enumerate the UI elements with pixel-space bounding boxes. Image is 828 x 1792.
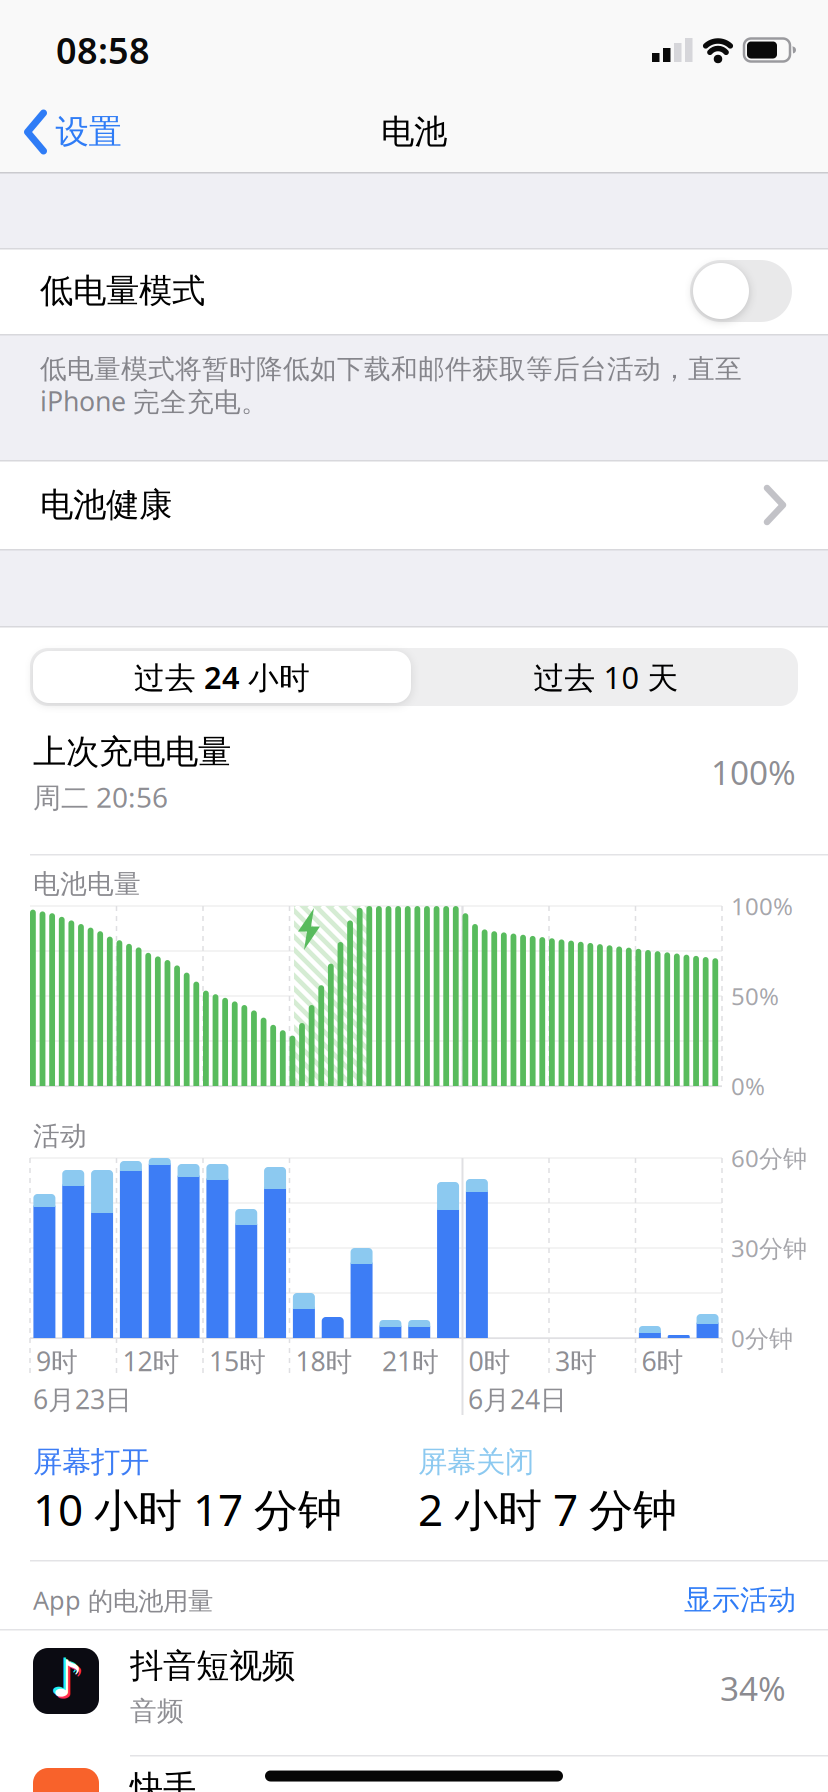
staticText: 音频 xyxy=(130,1695,184,1727)
staticText: iPhone 完全充电。 xyxy=(40,383,268,419)
staticText: 9时 xyxy=(36,1343,78,1379)
staticText: App 的电池用量 xyxy=(33,1583,213,1617)
staticText: 设置 xyxy=(55,111,121,152)
staticText: ♪ xyxy=(49,1648,81,1706)
button[interactable]: 显示活动 xyxy=(684,1583,796,1617)
button[interactable]: 低电量模式开关 xyxy=(690,260,792,322)
staticText: 6月24日 xyxy=(468,1381,567,1417)
staticText: 30分钟 xyxy=(731,1232,807,1264)
staticText: 2 小时 7 分钟 xyxy=(418,1480,677,1538)
staticText: 60分钟 xyxy=(731,1142,807,1174)
staticText: 12时 xyxy=(122,1343,179,1379)
staticText: 电池电量 xyxy=(33,868,141,900)
staticText: 08:58 xyxy=(56,26,150,74)
staticText: 0% xyxy=(731,1070,765,1102)
staticText: 6时 xyxy=(641,1343,683,1379)
staticText: 过去 24 小时 xyxy=(134,657,310,697)
staticText: 活动 xyxy=(33,1120,87,1152)
staticText: 低电量模式将暂时降低如下载和邮件获取等后台活动，直至 xyxy=(40,353,742,385)
staticText: ♪ xyxy=(53,1652,85,1710)
staticText: 21时 xyxy=(382,1343,439,1379)
staticText: 低电量模式 xyxy=(40,270,205,311)
staticText: 34% xyxy=(720,1666,786,1710)
staticText: 0时 xyxy=(468,1343,510,1379)
button[interactable]: 过去 10 天 xyxy=(417,651,795,703)
staticText: 显示活动 xyxy=(684,1583,796,1617)
staticText: 屏幕关闭 xyxy=(418,1444,534,1480)
staticText: 3时 xyxy=(555,1343,597,1379)
button[interactable]: 返回设置 xyxy=(24,102,121,162)
staticText: 15时 xyxy=(209,1343,266,1379)
staticText: 快手 xyxy=(130,1767,196,1792)
staticText: 过去 10 天 xyxy=(533,657,678,697)
staticText: ♪ xyxy=(51,1650,83,1708)
staticText: 上次充电电量 xyxy=(33,731,231,772)
staticText: 10 小时 17 分钟 xyxy=(33,1480,342,1538)
staticText: 50% xyxy=(731,980,779,1012)
button[interactable]: 过去 24 小时 xyxy=(33,651,411,703)
staticText: 周二 20:56 xyxy=(33,778,168,816)
staticText: 抖音短视频 xyxy=(130,1645,295,1686)
button[interactable]: 电池健康 xyxy=(0,461,828,549)
staticText: 电池健康 xyxy=(40,484,172,525)
staticText: 6月23日 xyxy=(33,1381,132,1417)
staticText: 100% xyxy=(711,750,796,794)
staticText: 18时 xyxy=(295,1343,352,1379)
staticText: 屏幕打开 xyxy=(33,1444,149,1480)
staticText: 0分钟 xyxy=(731,1322,793,1354)
staticText: 电池 xyxy=(381,111,447,152)
button[interactable]: 快手 xyxy=(0,1768,828,1792)
staticText: 100% xyxy=(731,890,793,922)
button[interactable]: ♪ xyxy=(0,1640,828,1756)
